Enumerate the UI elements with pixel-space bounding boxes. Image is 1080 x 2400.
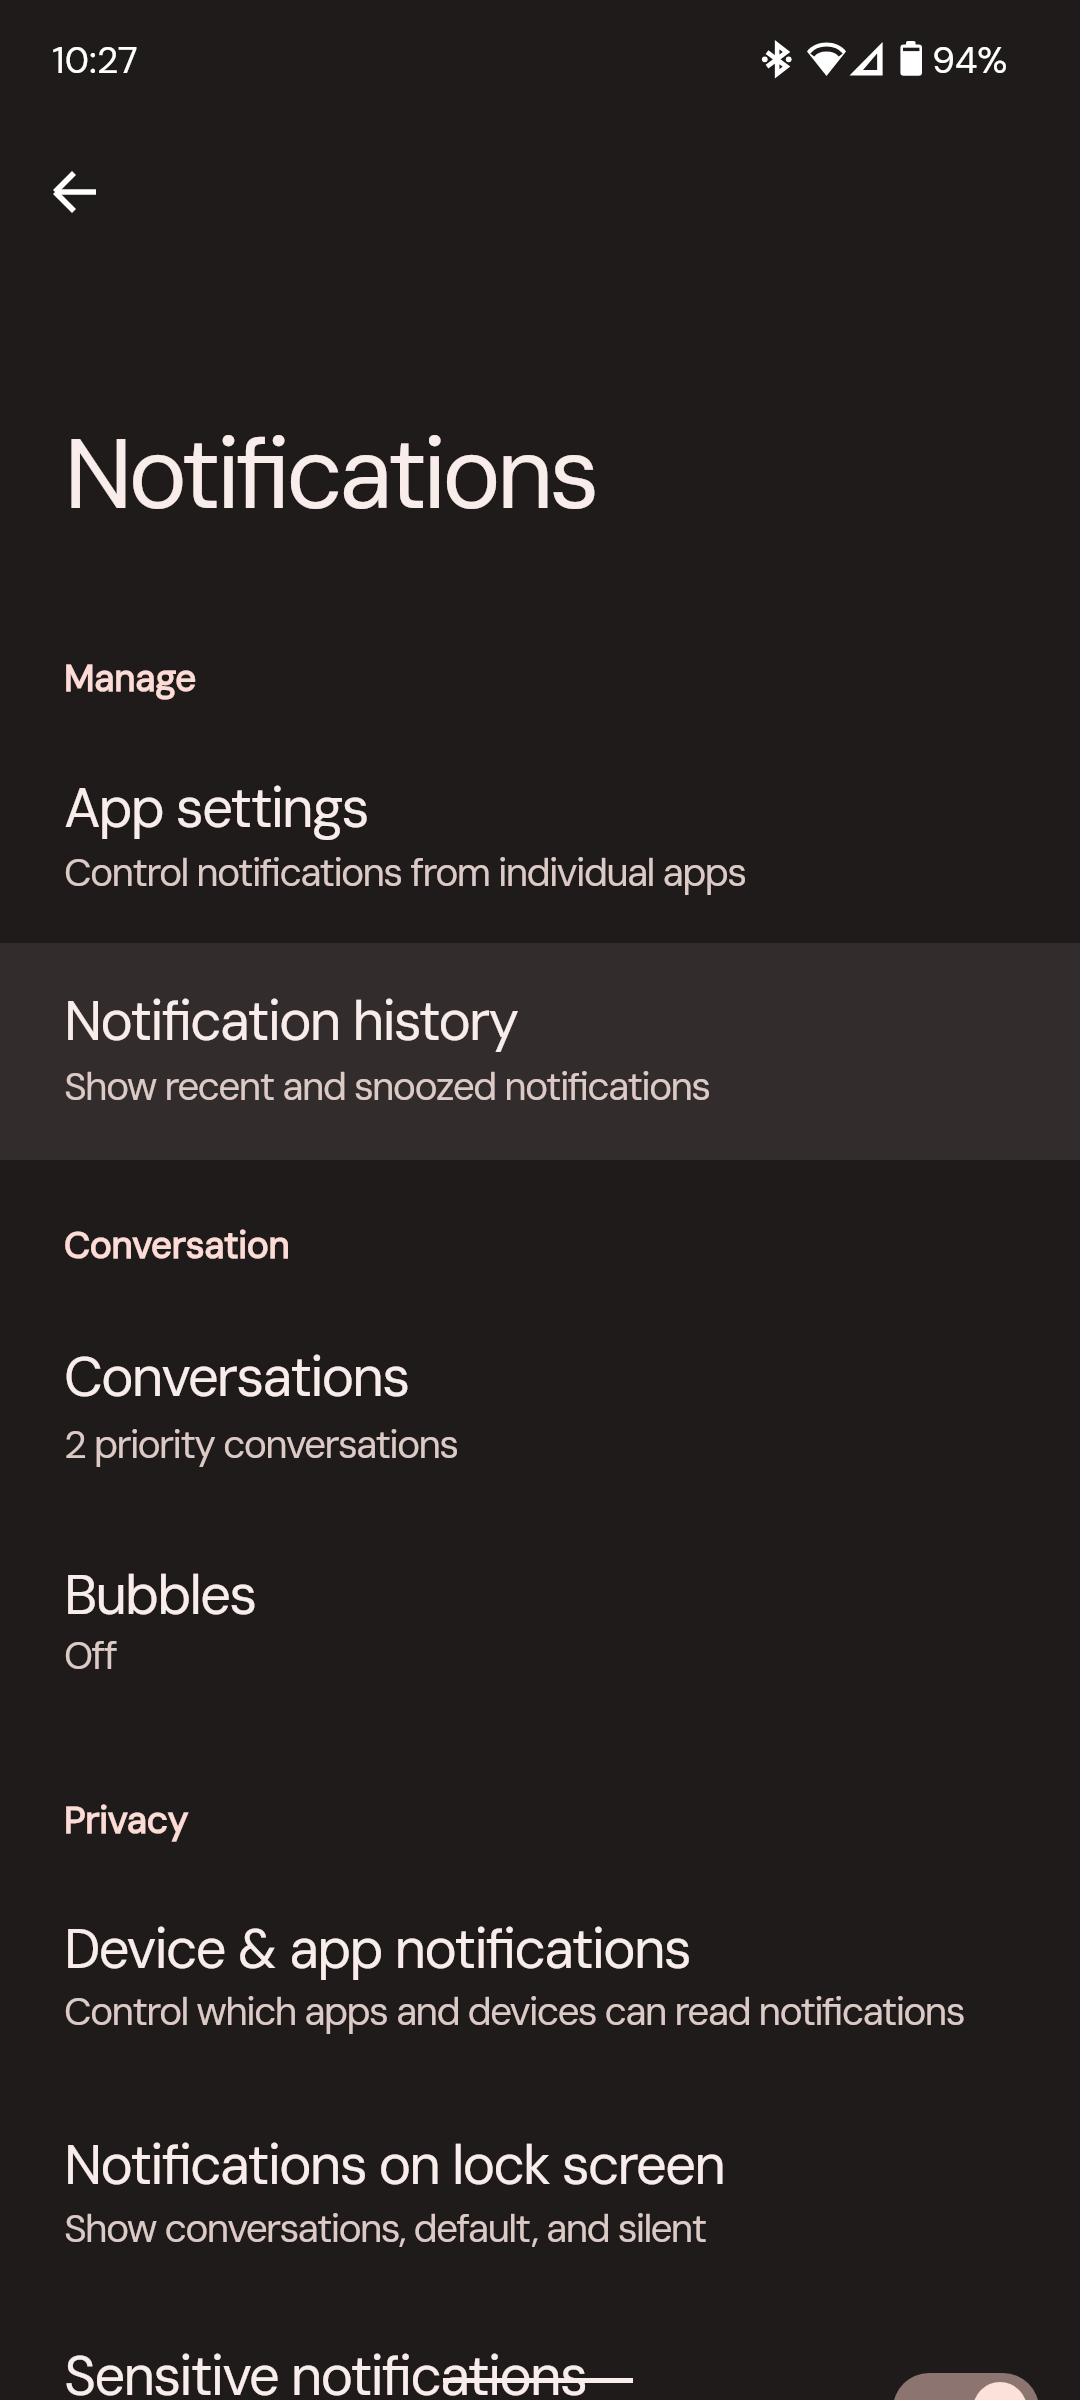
button[interactable]: Notification history [0,943,1080,1160]
staticText: Manage [64,654,196,702]
staticText: Notification history [64,985,518,1057]
staticText: Conversation [64,1221,290,1269]
staticText: Sensitive notifications [64,2340,586,2400]
staticText: Show recent and snoozed notifications [64,1061,710,1112]
staticText: Privacy [64,1796,188,1844]
staticText: 94% [932,36,1008,84]
button[interactable] [0,2303,1080,2400]
button[interactable]: Navigate up [41,159,107,225]
staticText: 10:27 [52,36,138,84]
staticText: Notifications [64,410,596,539]
staticText: 2 priority conversations [64,1419,458,1470]
button[interactable]: Device & app notifications [0,1871,1080,2087]
button[interactable]: App settings [0,730,1080,943]
staticText: Control notifications from individual ap… [64,847,746,898]
staticText: Notifications on lock screen [64,2129,724,2201]
staticText: Off [64,1630,116,1681]
button[interactable]: Sensitive notifications, on [893,2373,1039,2400]
button[interactable]: Notifications on lock screen [0,2087,1080,2303]
button[interactable]: Conversations [0,1299,1080,1517]
staticText: Bubbles [64,1559,256,1631]
staticText: Device & app notifications [64,1913,690,1985]
staticText: App settings [64,772,368,844]
button[interactable]: Bubbles [0,1517,1080,1730]
staticText: Show conversations, default, and silent [64,2203,706,2254]
staticText: Conversations [64,1341,409,1413]
staticText: Control which apps and devices can read … [64,1986,964,2037]
